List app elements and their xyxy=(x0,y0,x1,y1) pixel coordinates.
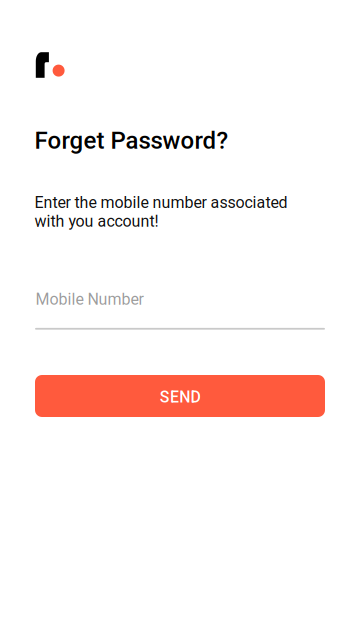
button[interactable]: SEND xyxy=(35,375,325,417)
button[interactable]: Mobile Number xyxy=(35,290,325,330)
staticText: with you account! xyxy=(35,212,159,231)
staticText: Mobile Number xyxy=(36,290,144,309)
staticText: Enter the mobile number associated xyxy=(35,193,288,212)
staticText: SEND xyxy=(160,388,200,406)
staticText: Forget Password? xyxy=(35,126,229,154)
